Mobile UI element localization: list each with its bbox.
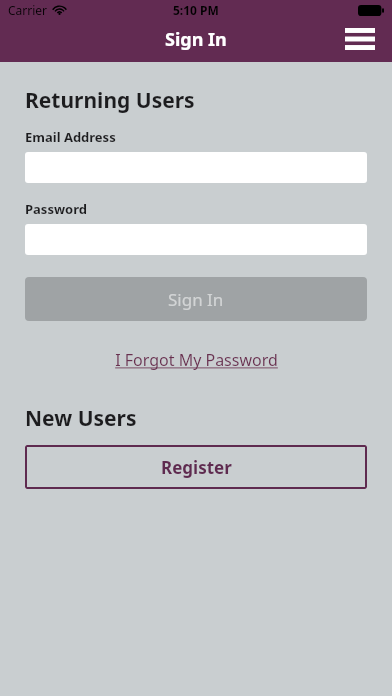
button[interactable]: I Forgot My Password [109, 347, 284, 373]
staticText: Sign In [165, 27, 227, 52]
staticText: Password [25, 200, 87, 218]
button[interactable]: Sign In [25, 277, 367, 321]
staticText: Register [161, 456, 232, 479]
button[interactable]: Register [25, 445, 367, 489]
staticText: Email Address [25, 128, 116, 146]
button[interactable]: Menu [338, 17, 382, 61]
staticText: 5:10 PM [173, 2, 219, 18]
staticText: New Users [25, 404, 137, 433]
staticText: Carrier [8, 2, 48, 18]
staticText: Sign In [168, 288, 224, 311]
staticText: Returning Users [25, 86, 195, 115]
staticText: I Forgot My Password [115, 349, 278, 371]
